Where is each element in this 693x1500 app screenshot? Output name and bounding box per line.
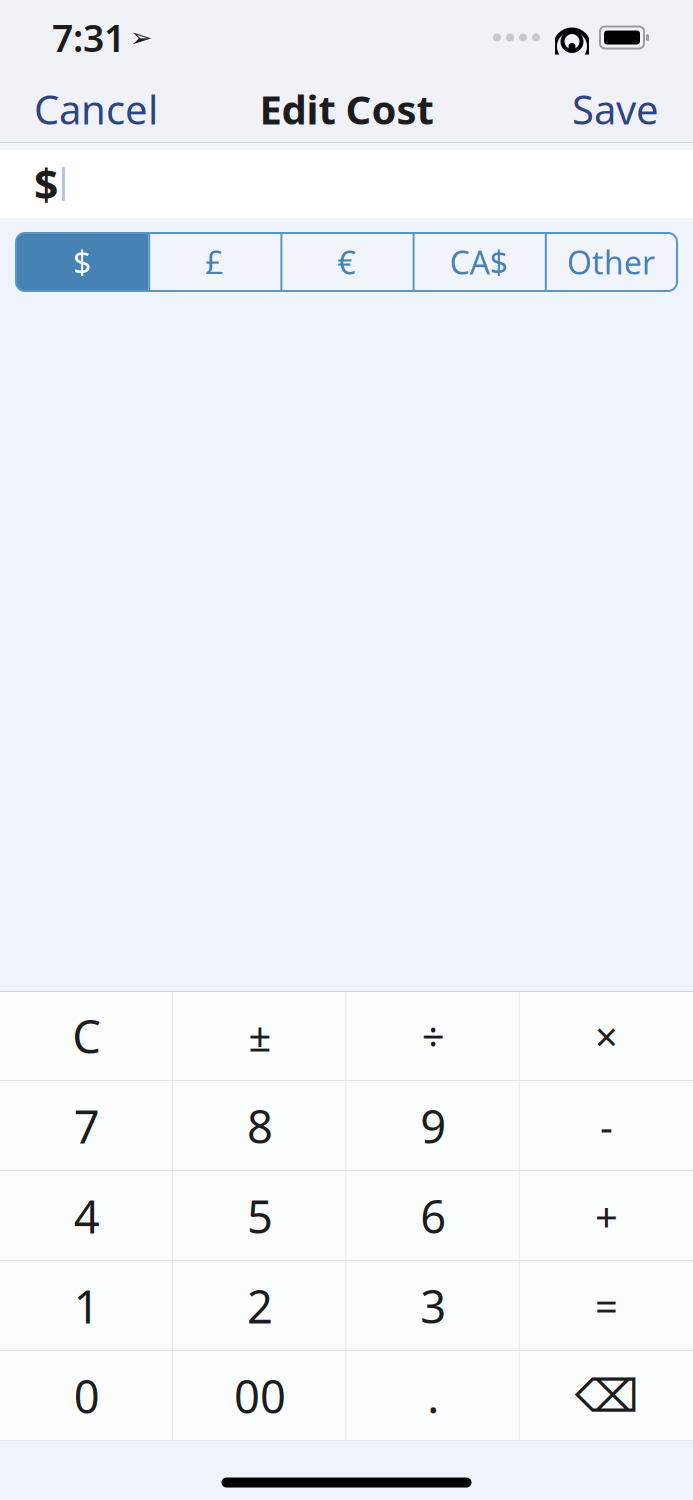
staticText: ➢	[130, 22, 152, 53]
button[interactable]: 9	[346, 1081, 520, 1171]
staticText: Other	[567, 241, 655, 283]
staticText: 7:31	[52, 13, 125, 62]
button[interactable]: Other	[545, 233, 677, 291]
staticText: C	[72, 1006, 101, 1066]
button[interactable]: C	[0, 991, 173, 1081]
staticText: 3	[420, 1276, 446, 1336]
staticText: Edit Cost	[259, 82, 433, 135]
button[interactable]: .	[346, 1351, 520, 1441]
staticText: 5	[247, 1186, 273, 1246]
button[interactable]: Save	[538, 75, 693, 143]
staticText: 0	[74, 1366, 100, 1426]
button[interactable]: €	[280, 233, 413, 291]
button[interactable]: 7	[0, 1081, 173, 1171]
staticText: -	[600, 1099, 613, 1152]
button[interactable]: ÷	[346, 991, 520, 1081]
staticText: $	[34, 156, 58, 212]
staticText: Cancel	[34, 82, 158, 135]
button[interactable]: 6	[346, 1171, 520, 1261]
staticText: 1	[74, 1276, 100, 1336]
staticText: 9	[420, 1096, 446, 1156]
button[interactable]: ×	[520, 991, 693, 1081]
staticText: Save	[572, 82, 659, 135]
staticText: =	[595, 1279, 618, 1332]
staticText: $	[73, 241, 91, 283]
staticText: ±	[248, 1009, 271, 1062]
staticText: 8	[247, 1096, 273, 1156]
button[interactable]: 3	[346, 1261, 520, 1351]
button[interactable]: =	[520, 1261, 693, 1351]
staticText: £	[205, 241, 223, 283]
staticText: ×	[595, 1009, 618, 1062]
staticText: ÷	[422, 1009, 445, 1062]
button[interactable]: 2	[173, 1261, 346, 1351]
staticText: .	[427, 1366, 439, 1426]
button[interactable]: CA$	[413, 233, 545, 291]
button[interactable]: ±	[173, 991, 346, 1081]
button[interactable]: 4	[0, 1171, 173, 1261]
staticText: 4	[74, 1186, 100, 1246]
button[interactable]: 1	[0, 1261, 173, 1351]
button[interactable]: 00	[173, 1351, 346, 1441]
staticText: 6	[420, 1186, 446, 1246]
staticText: +	[595, 1189, 618, 1242]
staticText: €	[337, 241, 355, 283]
staticText: 00	[234, 1366, 286, 1426]
button[interactable]: -	[520, 1081, 693, 1171]
button[interactable]: 5	[173, 1171, 346, 1261]
staticText: CA$	[450, 241, 508, 283]
staticText: 7	[74, 1096, 100, 1156]
button[interactable]: Delete	[520, 1351, 693, 1441]
button[interactable]: +	[520, 1171, 693, 1261]
button[interactable]: 8	[173, 1081, 346, 1171]
staticText: ⌫	[574, 1370, 638, 1422]
button[interactable]: 0	[0, 1351, 173, 1441]
button[interactable]: £	[148, 233, 280, 291]
staticText: 2	[247, 1276, 273, 1336]
button[interactable]: Cancel	[0, 75, 192, 143]
button[interactable]: $	[16, 233, 148, 291]
